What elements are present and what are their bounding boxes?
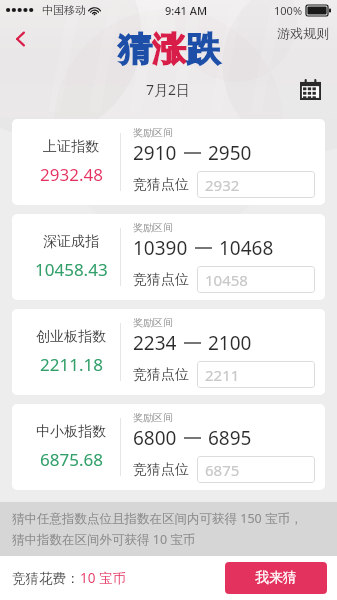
staticText: 奖励区间 [133,126,173,139]
button[interactable]: 2211 [197,361,315,388]
staticText: 猜中指数在区间外可获得 10 宝币 [12,531,196,548]
staticText: 2211 [205,365,240,385]
staticText: 10390 [133,235,188,261]
staticText: 跌 [186,28,220,71]
staticText: 创业板指数 [36,328,106,346]
button[interactable]: 深证成指 [12,214,325,300]
staticText: 奖励区间 [133,411,173,424]
staticText: 2211.18 [40,353,103,376]
staticText: 我来猜 [255,569,297,587]
staticText: 竞猜点位 [133,461,189,479]
staticText: 100% [274,3,303,18]
staticText: 6875 [205,460,240,480]
button[interactable]: 2932 [197,171,315,198]
staticText: 猜 [118,28,152,71]
button[interactable]: 我来猜 [225,562,327,594]
button[interactable]: 返回 [4,22,38,56]
staticText: 竞猜点位 [133,176,189,194]
staticText: 2910 [133,140,177,166]
staticText: 2950 [208,140,252,166]
staticText: 2100 [208,330,252,356]
staticText: 10458.43 [35,258,108,281]
staticText: 竞猜点位 [133,271,189,289]
staticText: 中国移动 [42,3,86,17]
staticText: 6875.68 [40,448,103,471]
button[interactable]: 创业板指数 [12,309,325,395]
staticText: 2932.48 [40,163,103,186]
button[interactable]: 上证指数 [12,119,325,205]
staticText: 10458 [205,270,248,290]
staticText: 奖励区间 [133,316,173,329]
staticText: 2932 [205,175,240,195]
button[interactable]: 选择日期 [295,74,325,104]
staticText: 10 宝币 [80,569,126,587]
staticText: 上证指数 [43,138,99,156]
staticText: 10468 [219,235,274,261]
staticText: 猜中任意指数点位且指数在区间内可获得 150 宝币， [12,510,303,527]
staticText: 游戏规则 [277,25,329,41]
button[interactable]: 6875 [197,456,315,483]
staticText: 9:41 AM [165,3,208,18]
button[interactable]: 游戏规则 [269,22,337,44]
staticText: 竞猜花费： [12,570,80,587]
staticText: 6895 [208,425,252,451]
staticText: 竞猜点位 [133,366,189,384]
button[interactable]: 10458 [197,266,315,293]
staticText: 中小板指数 [36,423,106,441]
staticText: 深证成指 [43,233,99,251]
staticText: 2234 [133,330,177,356]
staticText: 奖励区间 [133,221,173,234]
staticText: 6800 [133,425,177,451]
button[interactable]: 中小板指数 [12,404,325,490]
staticText: 7月2日 [146,80,191,99]
staticText: 涨 [152,28,186,71]
